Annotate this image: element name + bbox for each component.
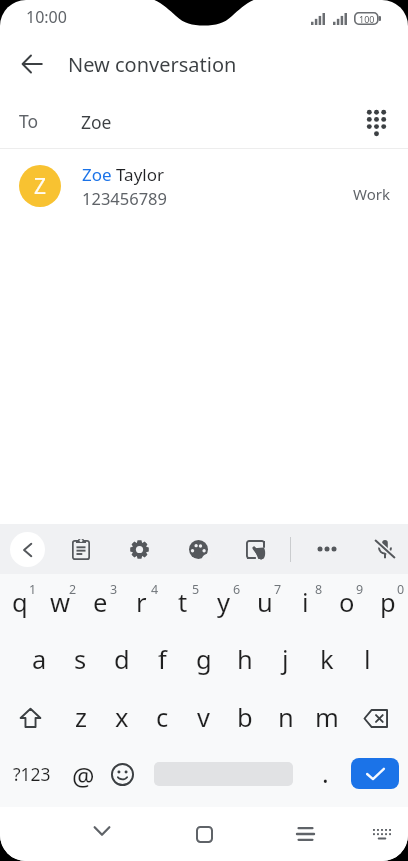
- button[interactable]: o: [326, 574, 367, 629]
- staticText: u: [257, 585, 273, 620]
- staticText: o: [339, 585, 355, 620]
- button[interactable]: n: [265, 685, 306, 742]
- staticText: 8: [315, 581, 323, 598]
- button[interactable]: More options: [310, 532, 344, 566]
- staticText: New conversation: [68, 51, 237, 78]
- staticText: 2: [69, 581, 77, 598]
- staticText: 6: [233, 581, 241, 598]
- staticText: y: [217, 585, 231, 620]
- button[interactable]: .: [304, 742, 346, 807]
- staticText: k: [320, 642, 334, 677]
- button[interactable]: Emoji: [101, 742, 143, 807]
- staticText: d: [114, 642, 130, 677]
- button[interactable]: Back: [8, 40, 56, 88]
- staticText: b: [237, 700, 253, 735]
- staticText: 5: [192, 581, 200, 598]
- staticText: h: [237, 642, 253, 677]
- staticText: p: [380, 585, 396, 620]
- staticText: v: [197, 700, 210, 735]
- staticText: i: [302, 585, 309, 620]
- staticText: x: [115, 700, 129, 735]
- button[interactable]: @: [62, 742, 104, 807]
- staticText: 100: [359, 13, 375, 25]
- button[interactable]: v: [183, 685, 224, 742]
- button[interactable]: ?123: [2, 742, 62, 807]
- button[interactable]: Resize keyboard: [238, 532, 272, 566]
- button[interactable]: l: [347, 629, 388, 685]
- staticText: l: [364, 642, 371, 677]
- staticText: n: [278, 700, 294, 735]
- button[interactable]: i: [285, 574, 326, 629]
- staticText: m: [315, 700, 339, 735]
- staticText: @: [72, 759, 95, 793]
- button[interactable]: p: [367, 574, 408, 629]
- button[interactable]: Voice input: [368, 532, 402, 566]
- button[interactable]: z: [60, 685, 101, 742]
- staticText: 4: [151, 581, 159, 598]
- button[interactable]: m: [306, 685, 347, 742]
- staticText: c: [156, 700, 169, 735]
- staticText: ?123: [13, 762, 51, 786]
- staticText: 7: [274, 581, 282, 598]
- staticText: 0: [397, 581, 405, 598]
- button[interactable]: f: [142, 629, 183, 685]
- staticText: g: [196, 642, 212, 677]
- staticText: 3: [110, 581, 118, 598]
- button[interactable]: h: [224, 629, 265, 685]
- button[interactable]: Clipboard: [64, 532, 98, 566]
- staticText: Zoe Taylor: [82, 163, 165, 186]
- staticText: To: [19, 109, 39, 133]
- button[interactable]: t: [162, 574, 203, 629]
- staticText: f: [158, 642, 167, 677]
- button[interactable]: Switch keyboard: [359, 811, 405, 857]
- button[interactable]: Recent apps: [282, 811, 328, 857]
- staticText: 123456789: [82, 187, 167, 209]
- button[interactable]: Backspace: [347, 685, 408, 742]
- staticText: s: [74, 642, 87, 677]
- button[interactable]: Collapse toolbar: [10, 532, 45, 567]
- button[interactable]: d: [101, 629, 142, 685]
- button[interactable]: Dialpad: [352, 96, 400, 144]
- staticText: j: [282, 642, 289, 677]
- staticText: r: [136, 585, 147, 620]
- staticText: Work: [353, 184, 390, 204]
- button[interactable]: Send: [351, 758, 399, 789]
- button[interactable]: Theme: [181, 532, 215, 566]
- staticText: 1: [29, 581, 37, 598]
- staticText: .: [322, 756, 329, 790]
- button[interactable]: j: [265, 629, 306, 685]
- button[interactable]: u: [244, 574, 285, 629]
- staticText: Z: [34, 172, 47, 201]
- button[interactable]: e: [80, 574, 121, 629]
- staticText: w: [50, 585, 71, 620]
- button[interactable]: Z: [0, 149, 408, 223]
- staticText: 10:00: [26, 6, 67, 28]
- button[interactable]: a: [19, 629, 60, 685]
- button[interactable]: b: [224, 685, 265, 742]
- button[interactable]: w: [40, 574, 80, 629]
- button[interactable]: y: [203, 574, 244, 629]
- staticText: 9: [356, 581, 364, 598]
- staticText: a: [32, 642, 47, 677]
- staticText: z: [75, 700, 87, 735]
- button[interactable]: s: [60, 629, 101, 685]
- button[interactable]: Shift: [0, 685, 60, 742]
- button[interactable]: x: [101, 685, 142, 742]
- staticText: t: [178, 585, 188, 620]
- button[interactable]: Settings: [122, 532, 156, 566]
- button[interactable]: g: [183, 629, 224, 685]
- button[interactable]: Hide keyboard: [79, 808, 125, 854]
- button[interactable]: k: [306, 629, 347, 685]
- staticText: e: [93, 585, 108, 620]
- staticText: q: [12, 585, 28, 620]
- button[interactable]: c: [142, 685, 183, 742]
- staticText: Zoe: [81, 110, 112, 134]
- button[interactable]: q: [0, 574, 40, 629]
- button[interactable]: Home: [181, 811, 227, 857]
- button[interactable]: r: [121, 574, 162, 629]
